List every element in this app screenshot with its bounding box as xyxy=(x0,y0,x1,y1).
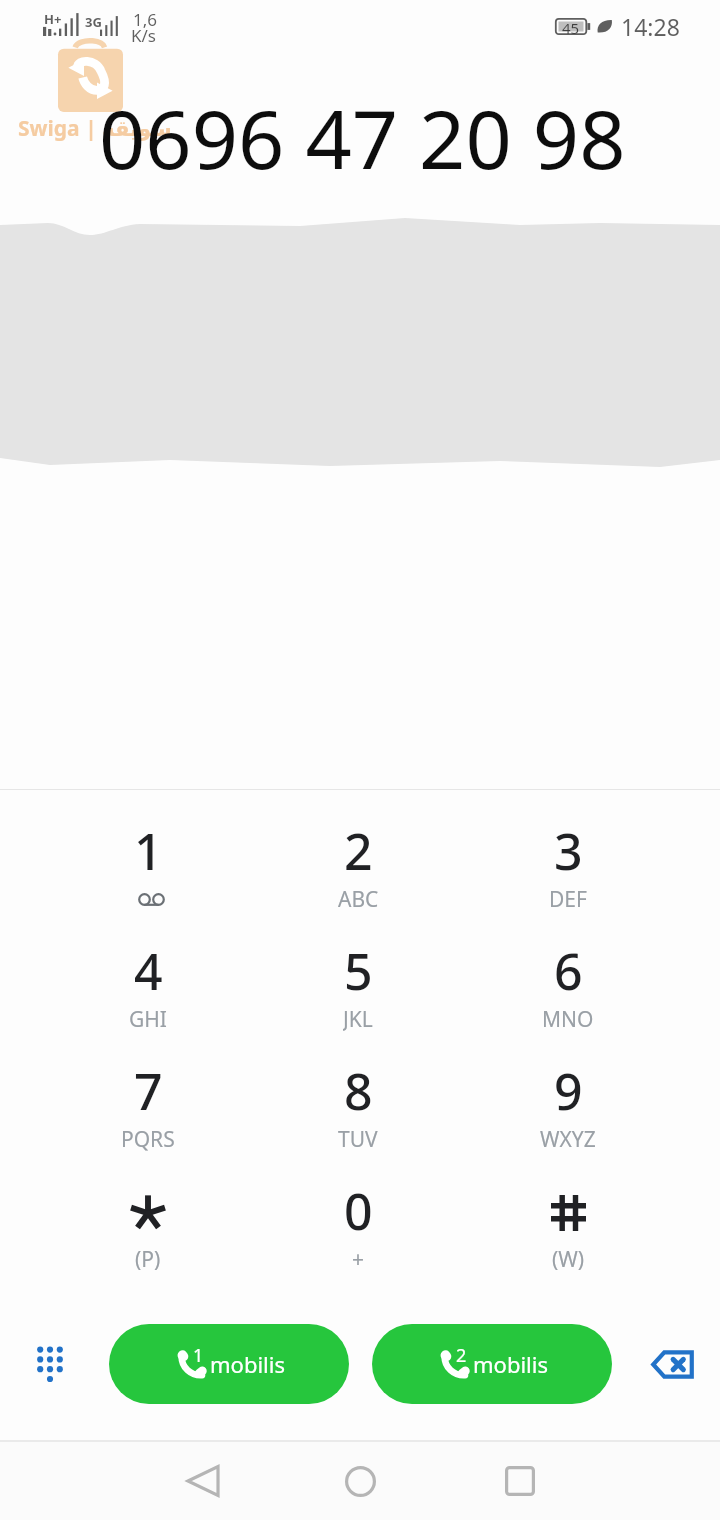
staticText: Swiga | سويقة xyxy=(18,114,172,143)
staticText: MNO xyxy=(542,1005,594,1031)
staticText: (W) xyxy=(552,1245,585,1271)
button[interactable]: (P) xyxy=(43,1177,253,1297)
button[interactable]: Recents xyxy=(476,1442,564,1520)
staticText: 0696 47 20 98 xyxy=(99,82,626,192)
staticText: 9 xyxy=(554,1057,583,1113)
staticText: 5 xyxy=(344,937,373,993)
staticText: JKL xyxy=(343,1005,373,1031)
staticText: 4 xyxy=(134,937,163,993)
button[interactable]: 1 xyxy=(109,1324,349,1404)
button[interactable]: (W) xyxy=(463,1177,673,1297)
staticText: 1 xyxy=(193,1343,204,1368)
button[interactable]: Home xyxy=(316,1442,404,1520)
button[interactable]: 2 xyxy=(372,1324,612,1404)
button[interactable]: 4 xyxy=(43,937,253,1057)
button[interactable]: Back xyxy=(159,1442,247,1520)
staticText: 1 xyxy=(134,817,163,873)
staticText: GHI xyxy=(129,1005,167,1031)
staticText: 45 xyxy=(562,18,580,35)
button[interactable]: 5 xyxy=(253,937,463,1057)
staticText: 7 xyxy=(134,1057,163,1113)
staticText: mobilis xyxy=(210,1349,285,1379)
button[interactable]: 1 xyxy=(43,817,253,937)
staticText: ABC xyxy=(338,885,379,911)
button[interactable]: 9 xyxy=(463,1057,673,1177)
staticText: 8 xyxy=(344,1057,373,1113)
staticText: mobilis xyxy=(473,1349,548,1379)
staticText: PQRS xyxy=(121,1125,175,1151)
staticText: DEF xyxy=(549,885,587,911)
staticText: 2 xyxy=(344,817,373,873)
button[interactable]: Dialpad xyxy=(2,1318,94,1410)
staticText: H+ xyxy=(44,10,62,28)
button[interactable]: 2 xyxy=(253,817,463,937)
staticText: 2 xyxy=(456,1343,467,1368)
button[interactable]: 3 xyxy=(463,817,673,937)
staticText: 14:28 xyxy=(621,11,680,42)
button[interactable]: 7 xyxy=(43,1057,253,1177)
staticText: WXYZ xyxy=(540,1125,596,1151)
staticText: 3G xyxy=(85,13,102,31)
staticText: 0 xyxy=(344,1177,373,1233)
button[interactable]: 6 xyxy=(463,937,673,1057)
staticText: (P) xyxy=(135,1245,161,1271)
staticText: 6 xyxy=(554,937,583,993)
staticText: TUV xyxy=(338,1125,378,1151)
button[interactable]: 0 xyxy=(253,1177,463,1297)
staticText: 1,6 xyxy=(133,8,158,31)
staticText: K/s xyxy=(131,24,156,47)
button[interactable]: 8 xyxy=(253,1057,463,1177)
staticText: 3 xyxy=(554,817,583,873)
button[interactable]: Delete xyxy=(626,1318,718,1410)
staticText: + xyxy=(352,1245,365,1271)
